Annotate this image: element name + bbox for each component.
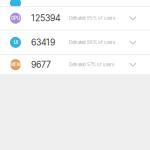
staticText: 9677 [31, 59, 51, 70]
staticText: Defeated 57% of users [69, 62, 114, 67]
staticText: MEM [10, 62, 21, 67]
staticText: Defeated 95% of users [69, 16, 115, 21]
staticText: 125394 [31, 13, 61, 23]
staticText: 63419 [31, 37, 55, 48]
button[interactable]: GPU [0, 7, 150, 30]
staticText: Defeated 96% of users [69, 40, 115, 45]
staticText: UI [13, 40, 17, 45]
staticText: GPU [11, 15, 20, 21]
button[interactable]: MEM [0, 55, 150, 74]
button[interactable]: UI [0, 30, 150, 54]
